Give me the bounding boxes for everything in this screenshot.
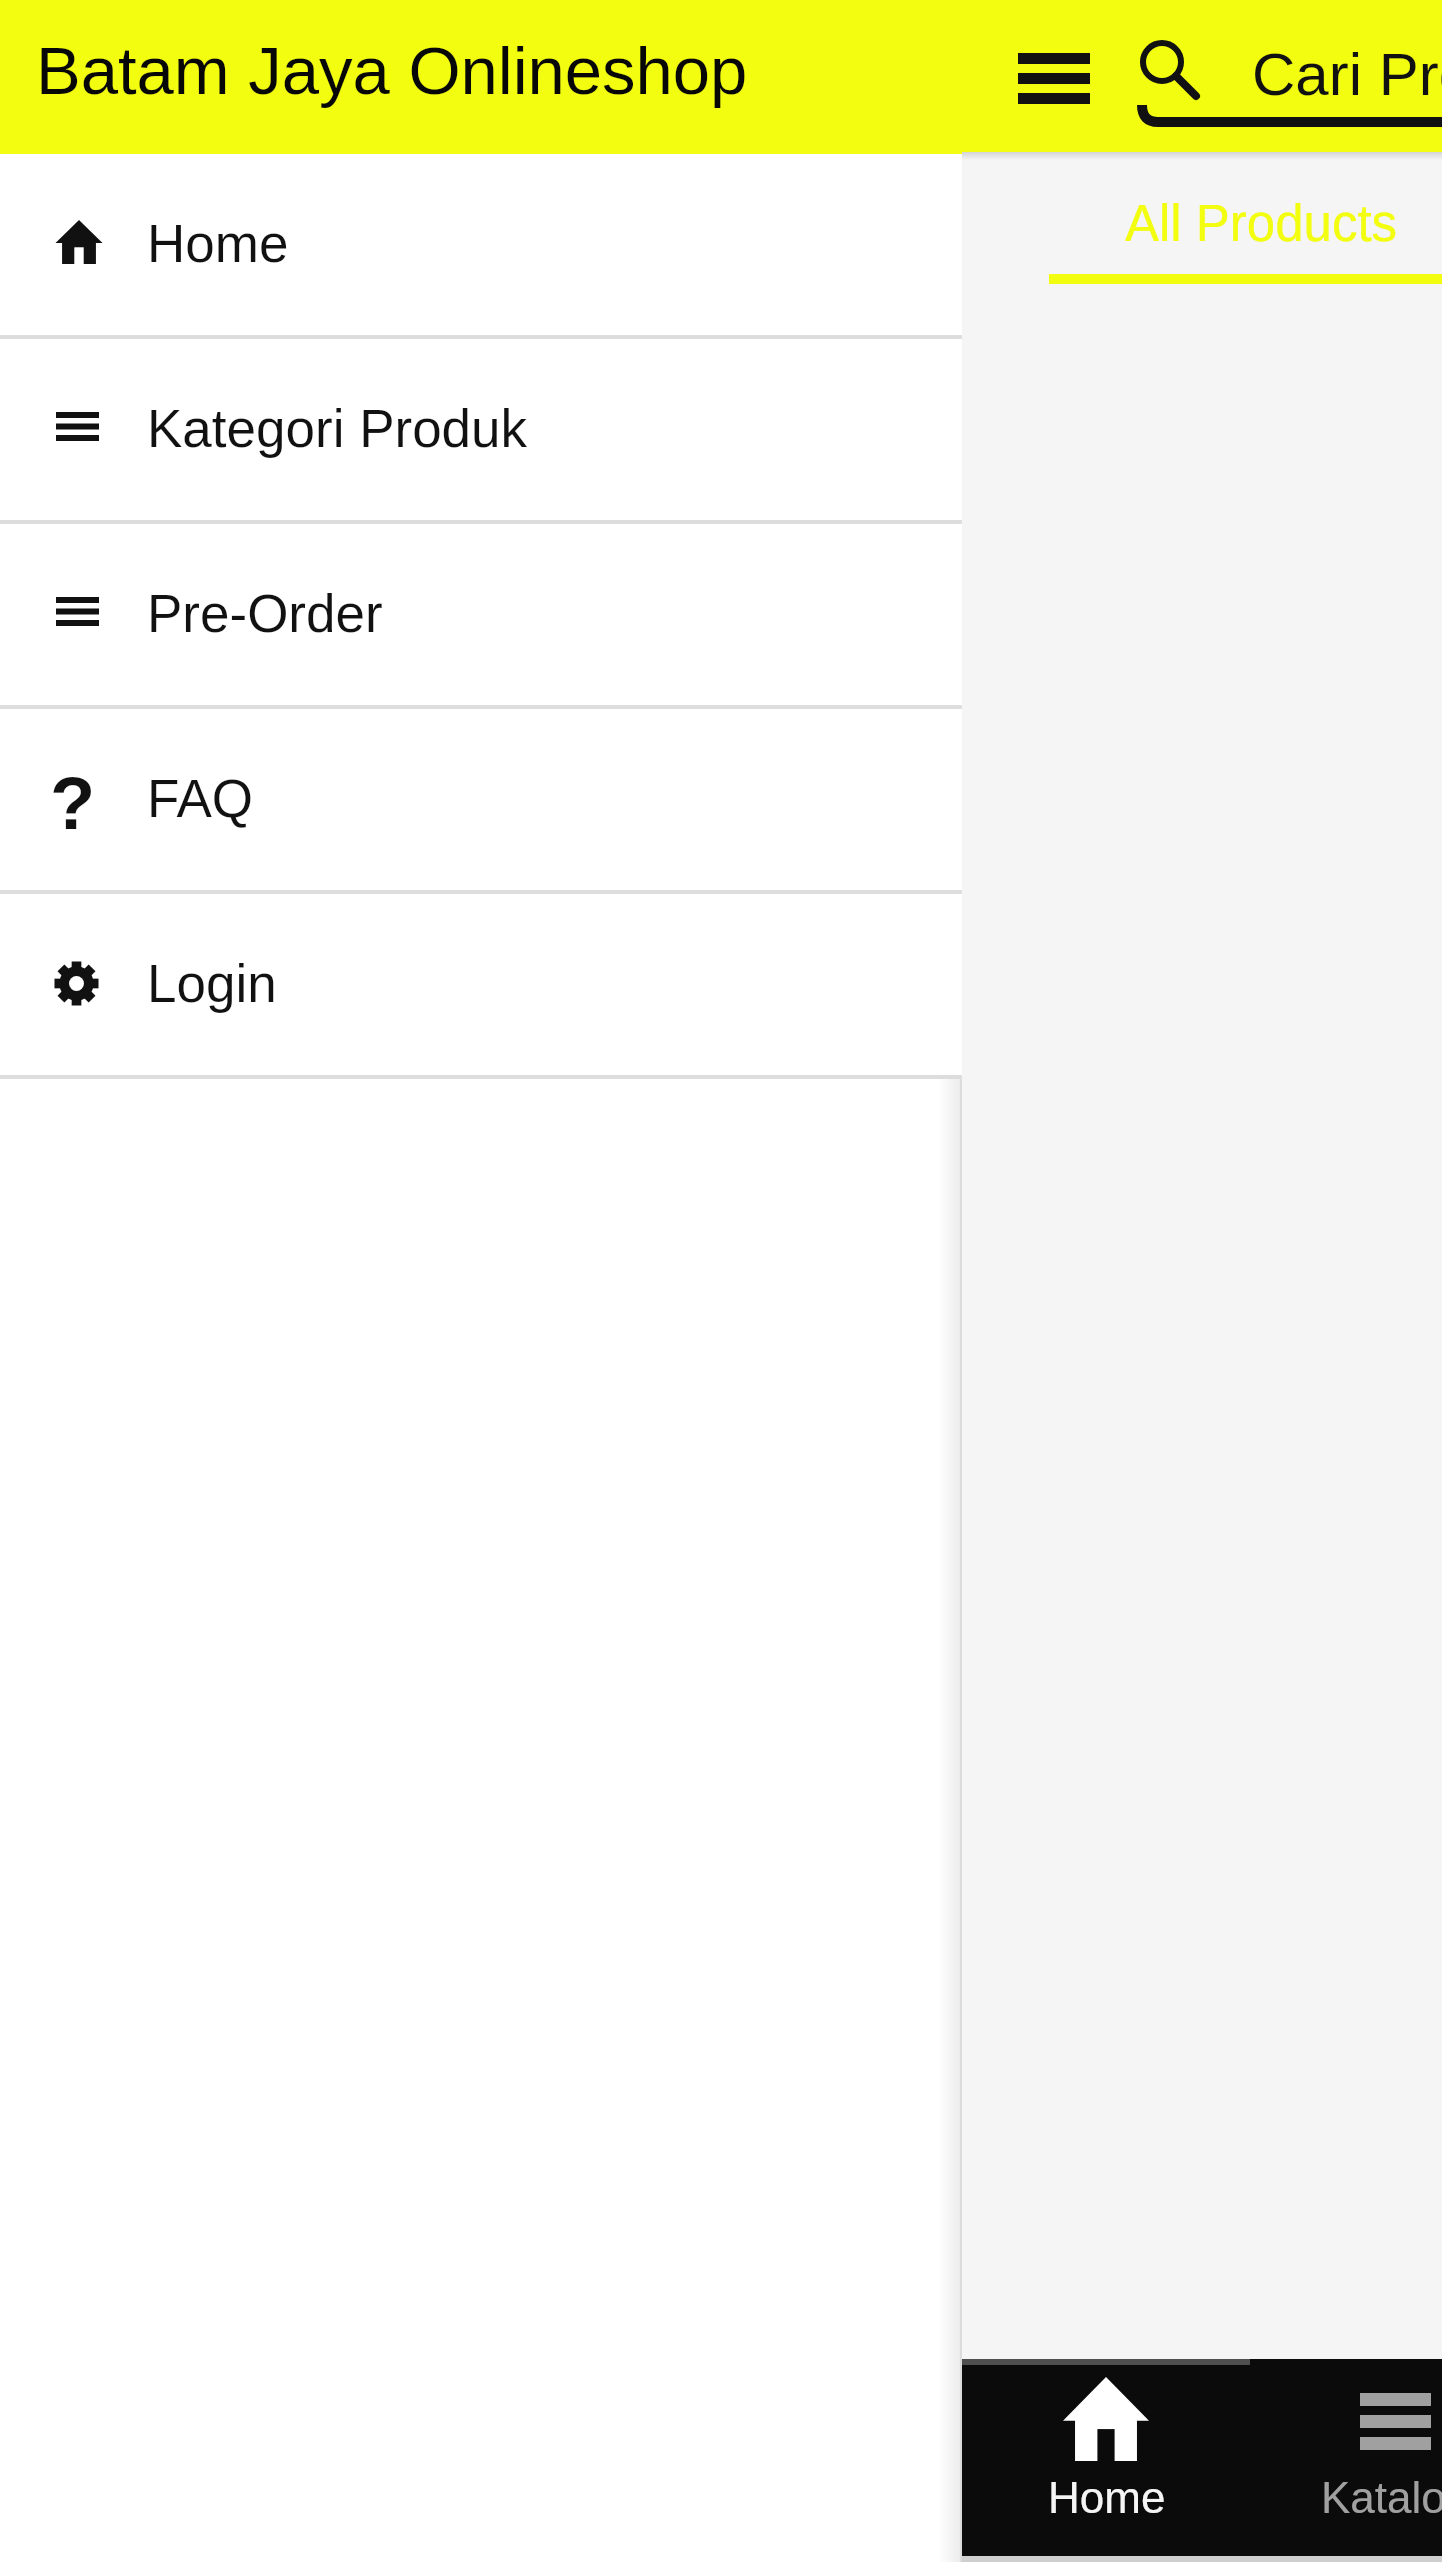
staticText: Katalog (1321, 2473, 1442, 2522)
staticText: Pre-Order (147, 584, 383, 643)
button[interactable]: Login (0, 894, 962, 1075)
button[interactable]: ? (0, 709, 962, 890)
button[interactable] (1120, 10, 1442, 140)
button[interactable]: Home (0, 154, 962, 335)
staticText: All Products (1125, 195, 1398, 252)
staticText: FAQ (147, 769, 254, 828)
button[interactable] (1250, 2359, 1442, 2556)
staticText: Kategori Produk (147, 399, 528, 458)
staticText: Home (1048, 2473, 1166, 2522)
staticText: Home (147, 214, 289, 273)
staticText: ? (50, 762, 96, 845)
button[interactable]: Pre-Order (0, 524, 962, 705)
staticText: Cari Produk (1252, 41, 1442, 108)
staticText: Login (147, 954, 277, 1013)
staticText: Batam Jaya Onlineshop (36, 33, 748, 108)
button[interactable] (962, 2359, 1250, 2556)
button[interactable] (990, 24, 1118, 132)
button[interactable] (1049, 160, 1442, 285)
button[interactable]: Kategori Produk (0, 339, 962, 520)
